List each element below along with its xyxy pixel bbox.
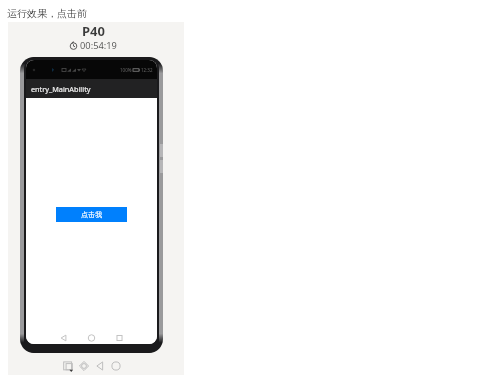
staticText: 点击我 xyxy=(81,210,102,219)
button[interactable]: Home xyxy=(110,360,122,372)
button[interactable]: Home xyxy=(84,332,99,344)
staticText: P40 xyxy=(82,22,105,40)
staticText: 00:54:19 xyxy=(80,39,117,52)
staticText: 100% xyxy=(120,67,132,73)
button[interactable]: 点击我 xyxy=(56,207,127,222)
button[interactable]: Screenshot xyxy=(62,360,74,372)
staticText: entry_MainAbility xyxy=(31,84,91,94)
button[interactable]: Back xyxy=(56,332,71,344)
button[interactable]: Back xyxy=(94,360,106,372)
button[interactable]: Rotate xyxy=(78,360,90,372)
staticText: 12:32 xyxy=(141,67,153,73)
button[interactable]: Recent apps xyxy=(112,332,127,344)
staticText: 运行效果，点击前 xyxy=(7,7,87,20)
